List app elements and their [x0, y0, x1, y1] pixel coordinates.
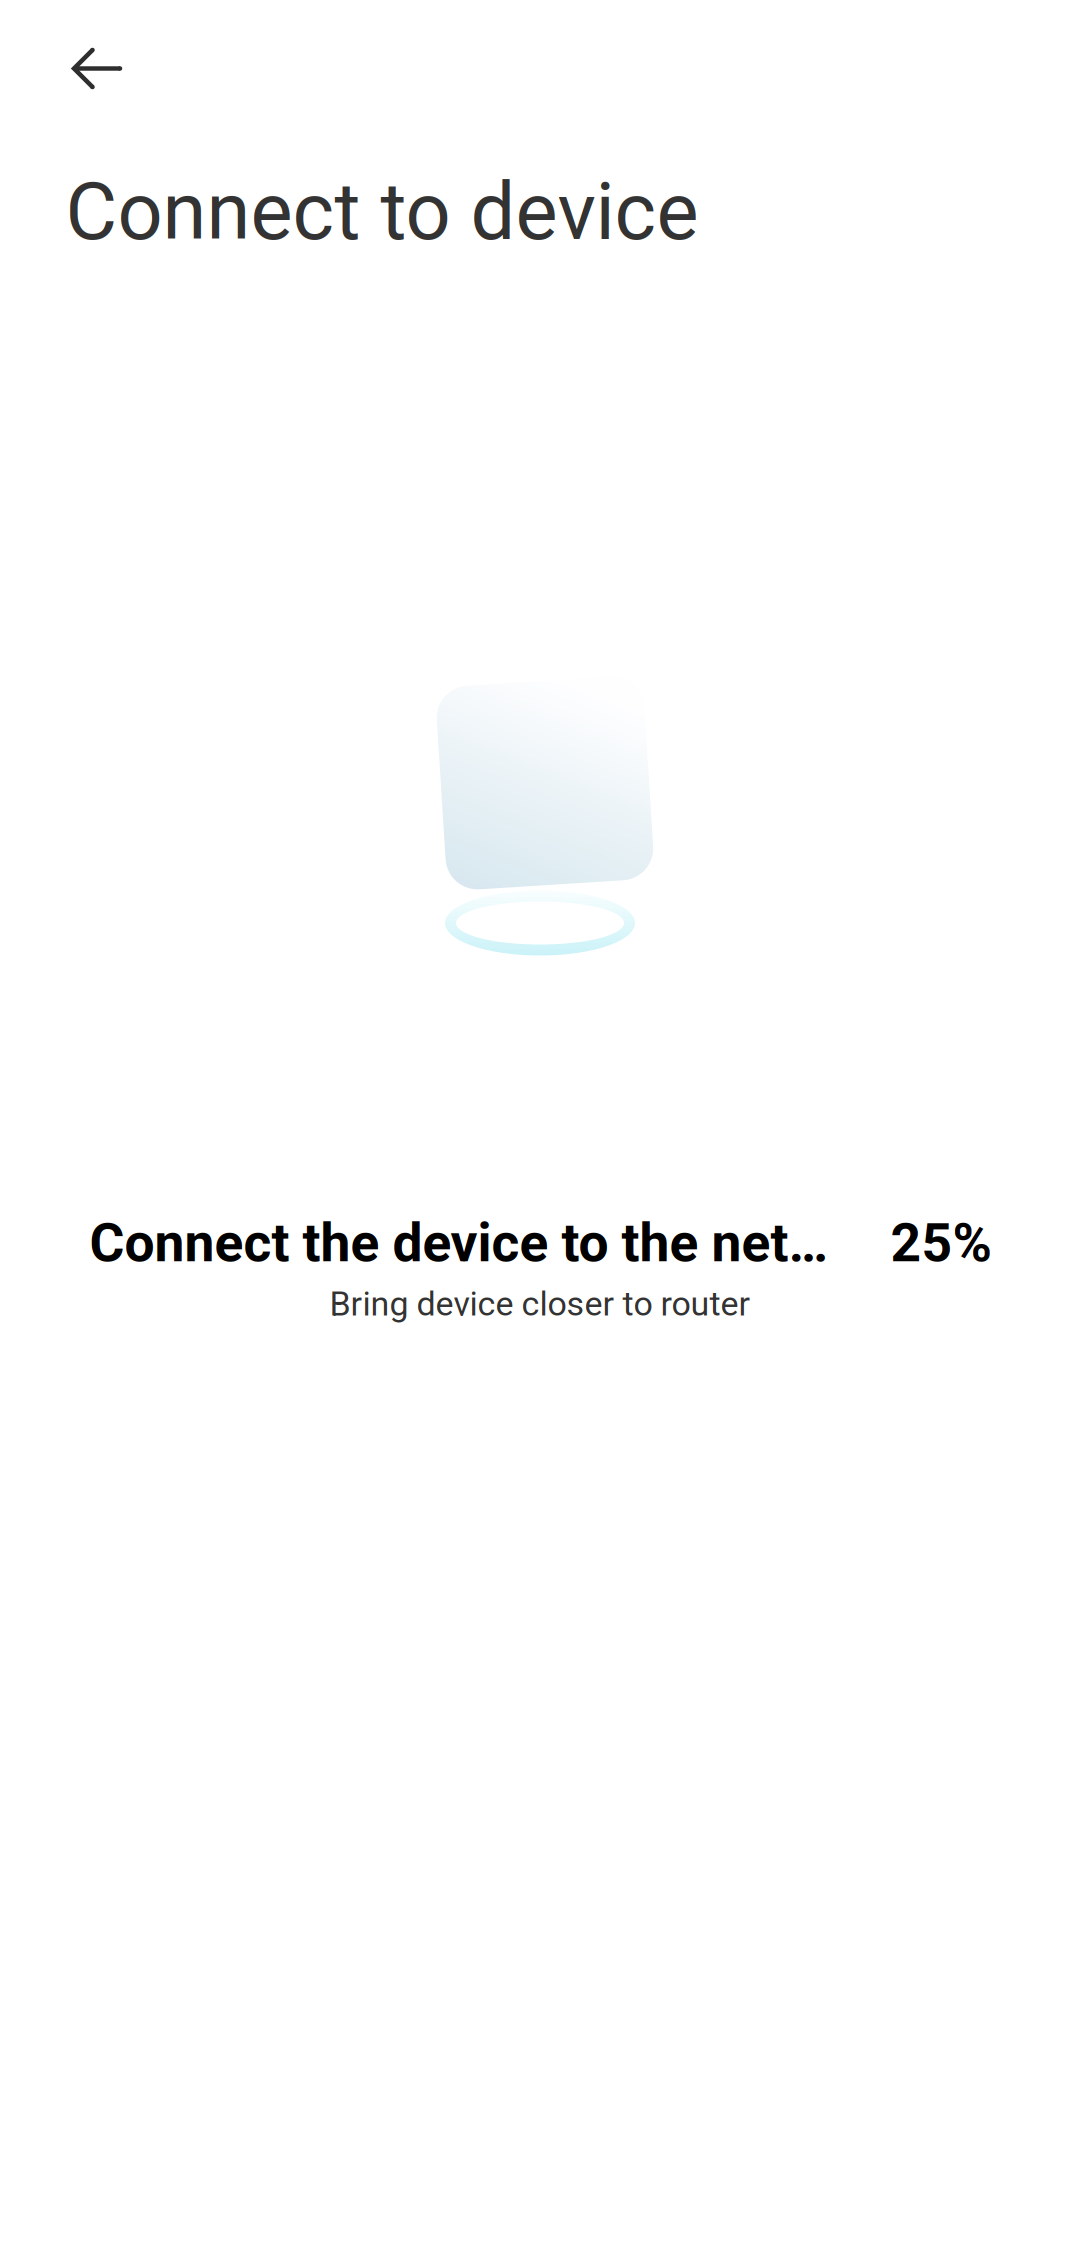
- button[interactable]: Back: [0, 0, 168, 135]
- staticText: Connect the device to the net…: [89, 1212, 828, 1274]
- staticText: Bring device closer to router: [329, 1284, 750, 1324]
- staticText: Connect to device: [65, 165, 698, 258]
- staticText: 25%: [890, 1212, 991, 1274]
